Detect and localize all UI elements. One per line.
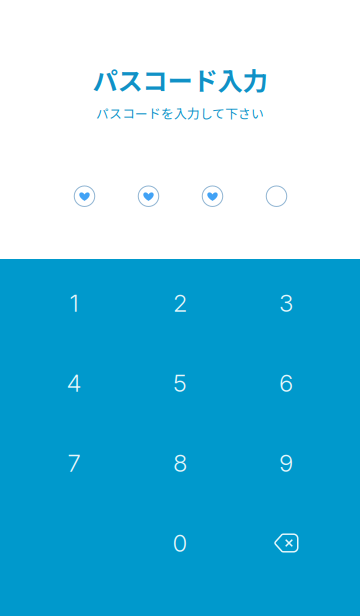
staticText: 3 xyxy=(279,288,293,317)
button[interactable]: Delete xyxy=(240,503,360,583)
staticText: 6 xyxy=(279,368,293,397)
button[interactable]: 5 xyxy=(120,343,240,423)
button[interactable]: 9 xyxy=(240,423,360,503)
staticText: 5 xyxy=(173,368,187,397)
staticText: 8 xyxy=(173,448,187,477)
button[interactable]: 4 xyxy=(0,343,120,423)
button[interactable]: 3 xyxy=(240,263,360,343)
staticText: パスコード入力 xyxy=(92,61,267,98)
button[interactable]: 1 xyxy=(0,263,120,343)
staticText: 4 xyxy=(66,368,81,397)
staticText: 0 xyxy=(172,528,187,557)
staticText: 9 xyxy=(279,448,293,477)
staticText: 2 xyxy=(173,288,187,317)
staticText: 7 xyxy=(67,448,80,477)
button[interactable]: 8 xyxy=(120,423,240,503)
staticText: パスコードを入力して下さい xyxy=(96,104,264,122)
button[interactable]: 6 xyxy=(240,343,360,423)
button[interactable]: 7 xyxy=(0,423,120,503)
staticText: 1 xyxy=(69,288,78,317)
button[interactable]: 0 xyxy=(120,503,240,583)
button[interactable]: 2 xyxy=(120,263,240,343)
